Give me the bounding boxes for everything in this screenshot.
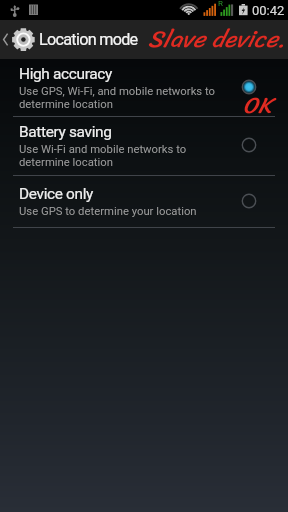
staticText: Device only xyxy=(19,185,94,203)
staticText: determine location xyxy=(19,156,113,169)
staticText: Battery saving xyxy=(19,123,112,141)
button[interactable]: Device only xyxy=(0,176,288,227)
staticText: High accuracy xyxy=(19,65,112,83)
button[interactable]: High accuracy xyxy=(0,59,288,116)
staticText: R xyxy=(218,0,223,8)
staticText: determine location xyxy=(19,98,113,111)
staticText: Use Wi-Fi and mobile networks to xyxy=(19,143,187,156)
staticText: Slave device. xyxy=(148,18,286,60)
staticText: 00:42 xyxy=(252,3,285,18)
button[interactable]: Up, Location mode xyxy=(0,20,288,59)
staticText: Use GPS to determine your location xyxy=(19,205,197,218)
button[interactable]: Battery saving xyxy=(0,117,288,175)
staticText: Location mode xyxy=(39,30,138,49)
staticText: Use GPS, Wi-Fi, and mobile networks to xyxy=(19,85,216,98)
staticText: OK xyxy=(243,85,272,126)
